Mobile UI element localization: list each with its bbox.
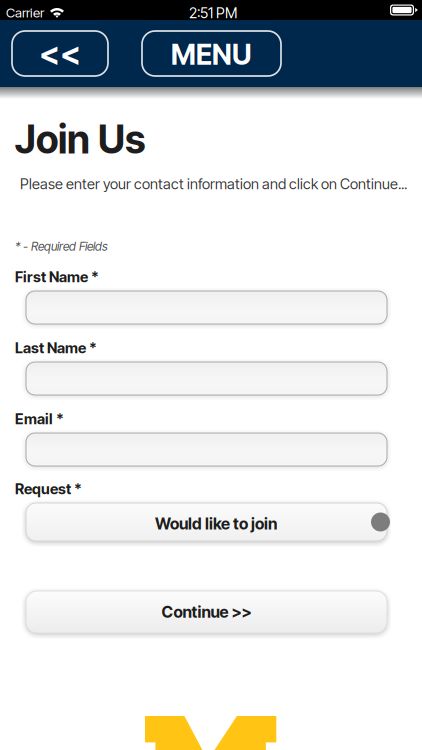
button[interactable]: Back: [12, 31, 108, 76]
staticText: Continue >>: [161, 602, 251, 622]
staticText: Carrier: [6, 4, 44, 21]
button[interactable]: Continue >>: [26, 591, 387, 633]
staticText: Email *: [15, 410, 64, 428]
button[interactable]: Would like to join: [26, 503, 387, 541]
staticText: 2:51 PM: [189, 4, 237, 22]
staticText: Please enter your contact information an…: [20, 175, 407, 193]
staticText: First Name *: [15, 268, 99, 286]
button[interactable]: Menu: [142, 31, 281, 76]
staticText: Request *: [15, 480, 82, 498]
staticText: <<: [39, 34, 81, 73]
staticText: Last Name *: [15, 339, 97, 357]
staticText: Join Us: [15, 116, 145, 163]
staticText: MENU: [171, 38, 252, 71]
staticText: * - Required Fields: [15, 239, 108, 253]
staticText: Would like to join: [155, 514, 277, 533]
